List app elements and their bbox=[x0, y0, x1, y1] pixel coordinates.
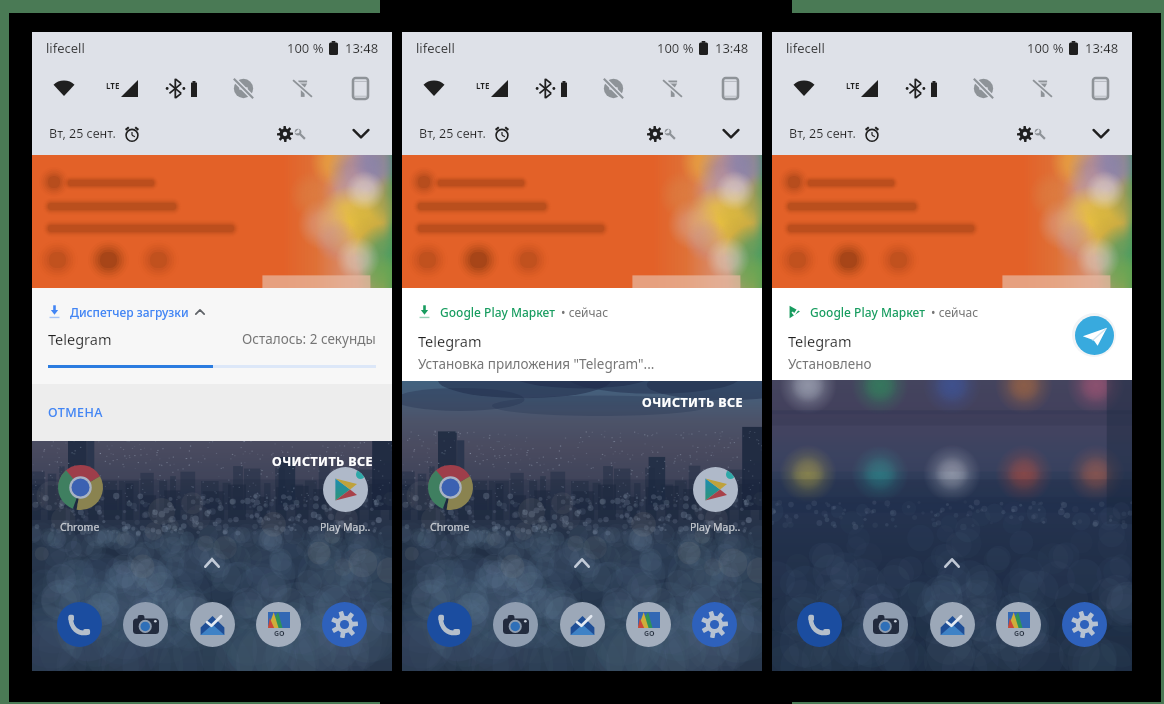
staticText: Play Мар.. bbox=[320, 520, 371, 534]
staticText: lifecell bbox=[786, 39, 825, 57]
button[interactable]: Expand quick settings bbox=[719, 125, 743, 142]
staticText: 100 % bbox=[287, 39, 324, 57]
staticText: Play Мар.. bbox=[690, 520, 741, 534]
button[interactable]: Google Play Маркет bbox=[772, 288, 1132, 380]
button[interactable]: Inbox bbox=[560, 602, 605, 647]
staticText: Установлено bbox=[788, 355, 872, 373]
staticText: LTE bbox=[476, 80, 490, 91]
staticText: • сейчас bbox=[561, 304, 609, 320]
staticText: 100 % bbox=[1027, 39, 1064, 57]
button[interactable]: Open app drawer bbox=[944, 558, 960, 568]
button[interactable]: Settings bbox=[1062, 602, 1107, 647]
staticText: 13:48 bbox=[345, 39, 379, 57]
button[interactable]: Files Go bbox=[996, 602, 1041, 647]
button[interactable]: Files Go bbox=[256, 602, 301, 647]
button[interactable]: ОЧИСТИТЬ ВСЕ bbox=[638, 390, 762, 415]
staticText: Вт, 25 сент. bbox=[789, 125, 856, 142]
button[interactable]: Settings bbox=[274, 123, 309, 145]
button[interactable]: ОТМЕНА bbox=[32, 384, 392, 441]
staticText: ОЧИСТИТЬ ВСЕ bbox=[272, 453, 374, 470]
button[interactable]: Inbox bbox=[190, 602, 235, 647]
staticText: GO bbox=[1014, 629, 1025, 639]
staticText: lifecell bbox=[416, 39, 455, 57]
staticText: 100 % bbox=[657, 39, 694, 57]
staticText: Вт, 25 сент. bbox=[49, 125, 116, 142]
staticText: LTE bbox=[846, 80, 860, 91]
button[interactable]: Play Мар.. bbox=[670, 467, 760, 534]
staticText: Google Play Маркет bbox=[810, 304, 925, 320]
staticText: ОТМЕНА bbox=[48, 404, 103, 421]
button[interactable]: Camera bbox=[863, 602, 908, 647]
staticText: Установка приложения "Telegram"... bbox=[418, 355, 655, 373]
staticText: Google Play Маркет bbox=[440, 304, 555, 320]
button[interactable]: Phone bbox=[57, 602, 102, 647]
button[interactable]: Camera bbox=[493, 602, 538, 647]
button[interactable]: Play Мар.. bbox=[300, 467, 390, 534]
button[interactable]: Settings bbox=[644, 123, 679, 145]
button[interactable]: ОЧИСТИТЬ ВСЕ bbox=[268, 449, 392, 474]
button[interactable]: Expand quick settings bbox=[349, 125, 373, 142]
button[interactable]: Settings bbox=[322, 602, 367, 647]
staticText: GO bbox=[274, 629, 285, 639]
button[interactable] bbox=[772, 155, 1132, 288]
staticText: Диспетчер загрузки bbox=[70, 304, 189, 320]
button[interactable]: Chrome bbox=[406, 465, 494, 534]
button[interactable] bbox=[32, 155, 392, 288]
staticText: GO bbox=[644, 629, 655, 639]
button[interactable]: Settings bbox=[1014, 123, 1049, 145]
staticText: • сейчас bbox=[931, 304, 979, 320]
staticText: lifecell bbox=[46, 39, 85, 57]
button[interactable]: Camera bbox=[123, 602, 168, 647]
staticText: Chrome bbox=[430, 520, 470, 534]
button[interactable]: Диспетчер загрузки bbox=[32, 288, 392, 384]
staticText: 13:48 bbox=[1085, 39, 1119, 57]
button[interactable]: Phone bbox=[427, 602, 472, 647]
staticText: ОЧИСТИТЬ ВСЕ bbox=[642, 394, 744, 411]
button[interactable]: Telegram bbox=[1072, 313, 1116, 357]
staticText: Вт, 25 сент. bbox=[419, 125, 486, 142]
button[interactable]: Files Go bbox=[626, 602, 671, 647]
button[interactable]: Chrome bbox=[36, 465, 124, 534]
button[interactable]: Open app drawer bbox=[574, 558, 590, 568]
staticText: 13:48 bbox=[715, 39, 749, 57]
button[interactable]: Inbox bbox=[930, 602, 975, 647]
staticText: Telegram bbox=[48, 329, 112, 349]
button[interactable]: Settings bbox=[692, 602, 737, 647]
button[interactable]: Expand quick settings bbox=[1089, 125, 1113, 142]
staticText: Telegram bbox=[418, 331, 482, 351]
button[interactable] bbox=[402, 155, 762, 288]
button[interactable]: Google Play Маркет bbox=[402, 288, 762, 381]
button[interactable]: Phone bbox=[797, 602, 842, 647]
staticText: LTE bbox=[106, 80, 120, 91]
button[interactable]: Open app drawer bbox=[204, 558, 220, 568]
staticText: Telegram bbox=[788, 331, 852, 351]
staticText: Осталось: 2 секунды bbox=[242, 330, 376, 348]
staticText: Chrome bbox=[60, 520, 100, 534]
